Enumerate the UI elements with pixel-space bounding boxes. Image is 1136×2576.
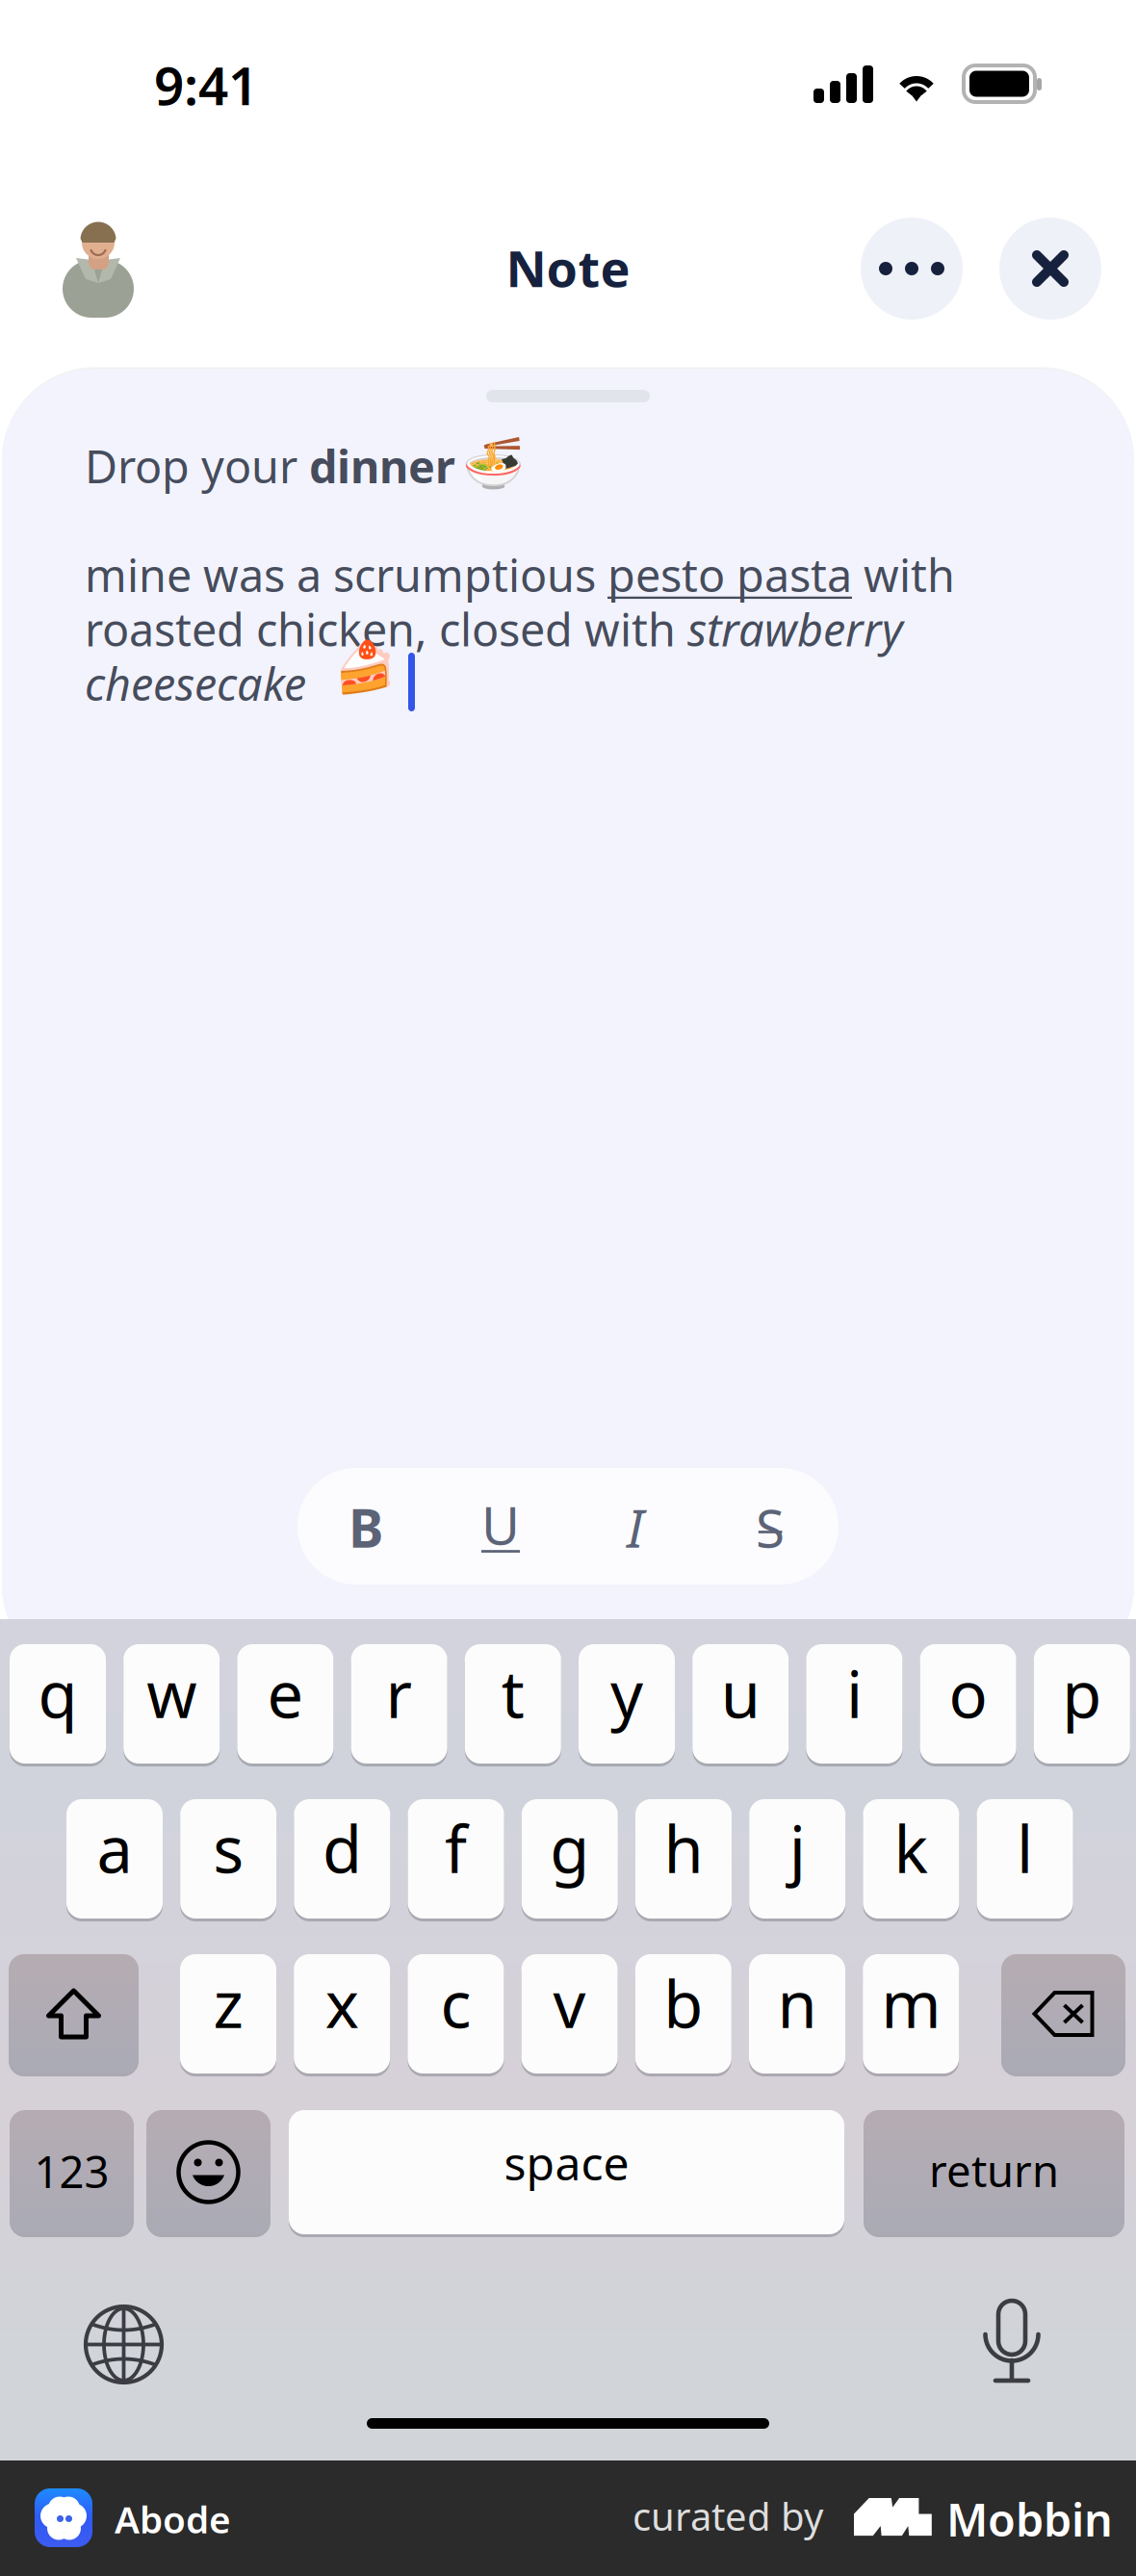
staticText: a [97,1806,132,1891]
button[interactable]: t [465,1644,561,1764]
button[interactable]: u [692,1644,789,1764]
button[interactable]: y [579,1644,675,1764]
button[interactable]: f [408,1799,504,1919]
button[interactable]: z [180,1954,276,2074]
staticText: curated by [633,2490,823,2541]
staticText: 9:41 [154,50,258,120]
staticText: 123 [34,2142,109,2200]
staticText: z [213,1961,243,2046]
button[interactable]: c [408,1954,504,2074]
staticText: r [386,1651,413,1736]
button[interactable]: U [433,1468,568,1584]
button[interactable]: x [294,1954,390,2074]
button[interactable]: space [289,2110,844,2234]
staticText: e [267,1651,304,1736]
staticText: b [664,1961,703,2046]
staticText: h [664,1806,703,1891]
staticText: space [504,2132,629,2193]
button[interactable]: e [237,1644,333,1764]
button[interactable]: Dictate [984,2301,1040,2383]
staticText: g [550,1806,589,1891]
staticText: S [756,1492,785,1562]
staticText: p [1062,1651,1102,1736]
staticText: w [147,1651,197,1736]
staticText: v [553,1961,586,2046]
button[interactable]: g [522,1799,618,1919]
staticText: mine was a scrumptious pesto pasta with … [85,545,955,713]
staticText: 🍰 [334,639,397,696]
button[interactable]: Switch keyboard [86,2306,162,2383]
button[interactable]: I [568,1468,703,1584]
staticText: l [1017,1806,1033,1891]
button[interactable]: a [66,1799,163,1919]
staticText: x [325,1961,359,2046]
button[interactable]: B [298,1468,433,1584]
staticText: Abode [115,2494,231,2544]
staticText: I [627,1492,644,1562]
staticText: s [213,1806,244,1891]
button[interactable]: r [351,1644,447,1764]
button[interactable]: More options [861,218,963,320]
button[interactable]: j [749,1799,845,1919]
button[interactable]: S [703,1468,838,1584]
button[interactable]: Delete [1001,1954,1125,2074]
button[interactable]: i [806,1644,902,1764]
button[interactable]: q [10,1644,106,1764]
button[interactable]: n [749,1954,845,2074]
staticText: y [610,1651,643,1736]
button[interactable]: return [864,2110,1124,2234]
staticText: n [777,1961,817,2046]
staticText: B [349,1492,383,1562]
button[interactable]: h [635,1799,732,1919]
button[interactable]: m [863,1954,959,2074]
staticText: d [322,1806,362,1891]
staticText: f [445,1806,467,1891]
button[interactable]: Emoji keyboard [146,2110,271,2234]
button[interactable]: k [863,1799,959,1919]
staticText: 🍜 [462,435,525,492]
staticText: k [894,1806,928,1891]
staticText: return [929,2141,1059,2199]
button[interactable]: o [920,1644,1016,1764]
staticText: Note [506,234,630,301]
staticText: t [501,1651,524,1736]
button[interactable]: Profile [44,214,152,322]
staticText: q [38,1651,77,1736]
staticText: o [949,1651,987,1736]
button[interactable]: v [521,1954,618,2074]
staticText: u [721,1651,760,1736]
button[interactable]: p [1034,1644,1130,1764]
staticText: j [789,1806,806,1891]
staticText: Drop your dinner [85,436,455,496]
button[interactable]: 123 [10,2110,134,2234]
button[interactable]: Close [999,218,1101,320]
button[interactable]: w [123,1644,220,1764]
button[interactable]: s [180,1799,276,1919]
staticText: c [440,1961,471,2046]
staticText: i [846,1651,862,1736]
button[interactable]: b [635,1954,731,2074]
button[interactable]: Shift [9,1954,139,2074]
staticText: m [881,1961,941,2046]
staticText: U [481,1489,520,1559]
button[interactable]: d [294,1799,390,1919]
button[interactable]: l [977,1799,1073,1919]
staticText: Mobbin [946,2489,1113,2549]
